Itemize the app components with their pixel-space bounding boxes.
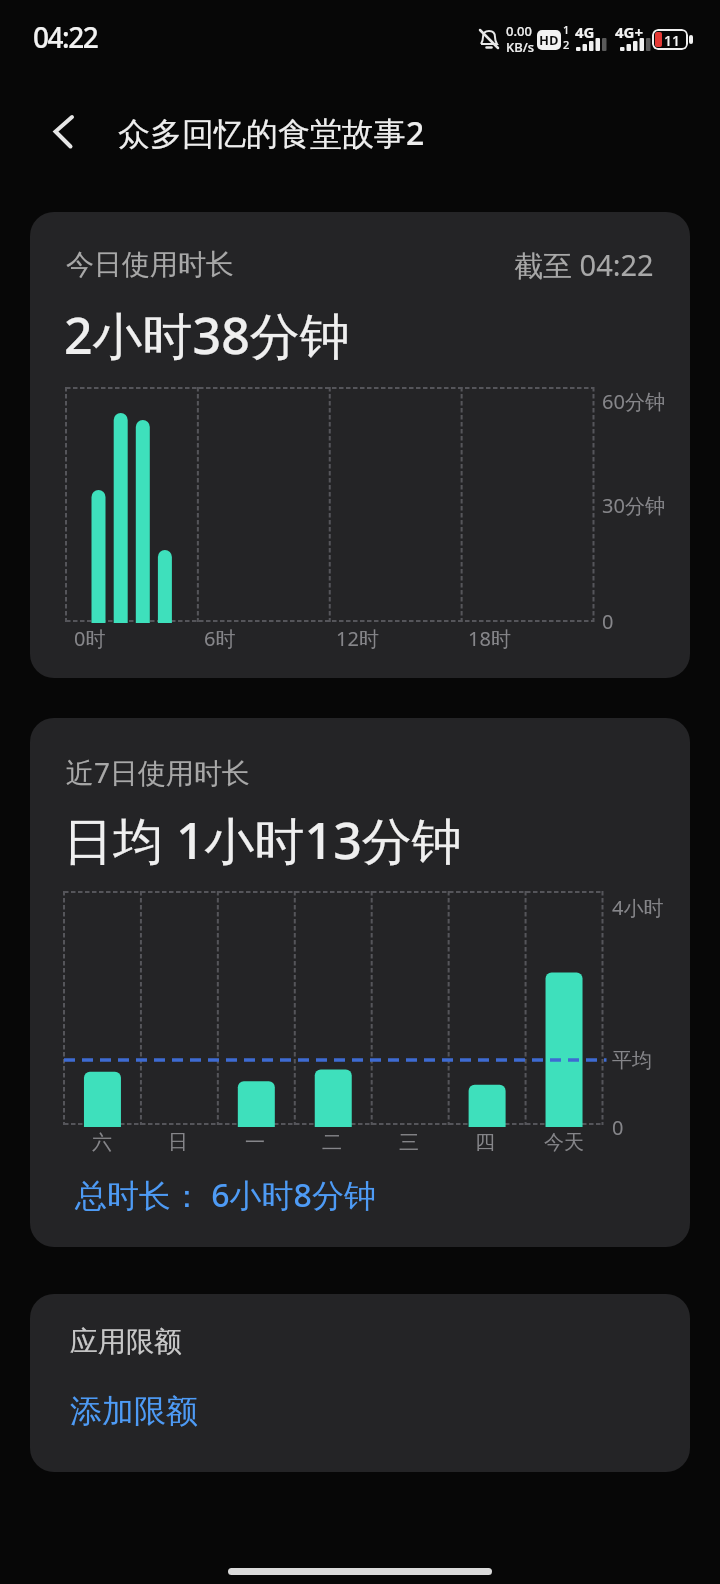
- staticText: 30分钟: [602, 492, 665, 519]
- staticText: 11: [664, 31, 681, 50]
- staticText: 18时: [468, 625, 511, 652]
- staticText: 0时: [74, 625, 106, 652]
- staticText: HD: [539, 31, 559, 49]
- button[interactable]: 今日使用时长: [30, 212, 690, 678]
- staticText: 一: [245, 1130, 265, 1155]
- button[interactable]: [40, 106, 90, 158]
- staticText: 2: [563, 37, 570, 52]
- staticText: KB/s: [506, 38, 535, 56]
- staticText: 60分钟: [602, 388, 665, 415]
- button[interactable]: 近7日使用时长: [30, 718, 690, 1247]
- staticText: 四: [475, 1130, 495, 1155]
- staticText: 4小时: [612, 894, 664, 921]
- staticText: 1: [563, 22, 570, 37]
- staticText: 三: [399, 1130, 419, 1155]
- staticText: 0: [602, 608, 614, 635]
- staticText: 平均: [612, 1048, 652, 1073]
- staticText: 0: [612, 1114, 624, 1141]
- staticText: 今天: [544, 1130, 584, 1155]
- staticText: 4G: [575, 22, 595, 42]
- staticText: 二: [322, 1130, 342, 1155]
- staticText: 六: [92, 1130, 112, 1155]
- staticText: 日: [168, 1130, 188, 1155]
- staticText: 近7日使用时长: [66, 753, 251, 791]
- staticText: 日均 1小时13分钟: [63, 806, 462, 874]
- staticText: 12时: [336, 625, 379, 652]
- staticText: 添加限额: [70, 1391, 198, 1431]
- staticText: 4G+: [615, 22, 644, 42]
- staticText: 0.00: [506, 22, 532, 40]
- staticText: 应用限额: [70, 1324, 182, 1359]
- staticText: 2小时38分钟: [64, 301, 350, 369]
- button[interactable]: 添加限额: [60, 1385, 260, 1437]
- staticText: 总时长： 6小时8分钟: [75, 1173, 376, 1217]
- staticText: 今日使用时长: [66, 247, 234, 282]
- staticText: 04:22: [33, 18, 98, 56]
- staticText: 截至 04:22: [514, 245, 654, 285]
- staticText: 众多回忆的食堂故事2: [118, 111, 425, 155]
- staticText: 6时: [204, 625, 236, 652]
